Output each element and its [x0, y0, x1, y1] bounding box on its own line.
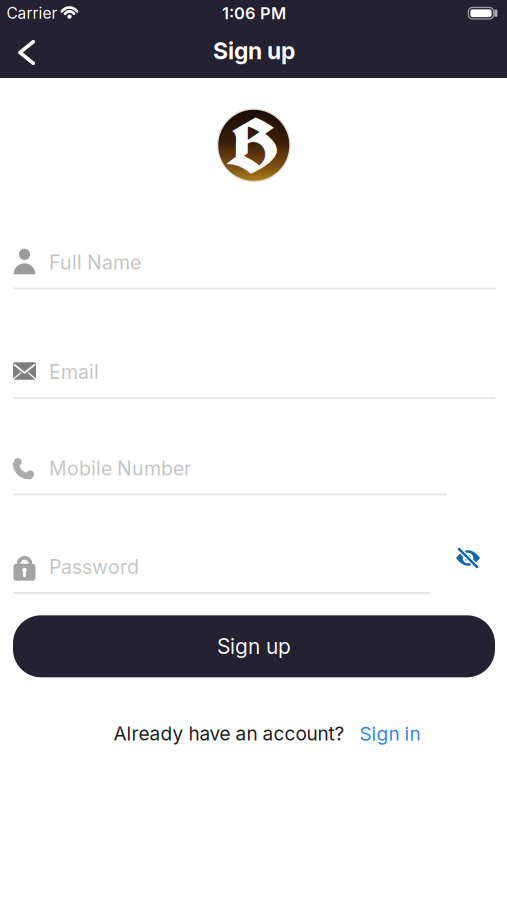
button[interactable]	[18, 40, 35, 64]
staticText: 1:06 PM	[222, 3, 286, 23]
button[interactable]: Password	[13, 548, 496, 595]
staticText: Full Name	[49, 251, 141, 274]
button[interactable]: Email	[13, 353, 496, 400]
staticText: Email	[49, 360, 99, 383]
staticText: Already have an account?	[113, 722, 344, 745]
button[interactable]	[456, 548, 480, 568]
staticText: Sign in	[359, 723, 420, 745]
staticText: Mobile Number	[49, 457, 191, 480]
staticText: B	[225, 96, 279, 195]
staticText: Sign up	[217, 634, 291, 659]
staticText: Sign up	[213, 37, 295, 64]
staticText: Password	[49, 555, 139, 578]
button[interactable]: Sign up	[13, 615, 495, 677]
button[interactable]: Mobile Number	[13, 450, 496, 497]
button[interactable]: Sign in	[359, 723, 420, 745]
button[interactable]: Full Name	[13, 244, 496, 291]
staticText: Carrier	[6, 4, 57, 22]
